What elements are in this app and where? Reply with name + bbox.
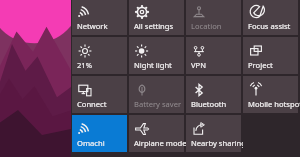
staticText: Night light bbox=[134, 60, 172, 70]
button[interactable]: Battery saver bbox=[129, 76, 184, 113]
button[interactable]: Mobile hotspot bbox=[243, 76, 298, 113]
button[interactable]: Nearby sharing bbox=[186, 115, 241, 152]
staticText: VPN bbox=[191, 60, 206, 70]
staticText: Location bbox=[191, 21, 222, 31]
staticText: All settings bbox=[134, 21, 174, 31]
staticText: Omachi bbox=[77, 138, 105, 148]
staticText: Focus assist bbox=[248, 21, 291, 31]
staticText: Airplane mode bbox=[134, 138, 187, 148]
button[interactable]: Connect bbox=[72, 76, 127, 113]
button[interactable]: VPN bbox=[186, 37, 241, 74]
staticText: Mobile hotspot bbox=[248, 99, 300, 109]
button[interactable]: Project bbox=[243, 37, 298, 74]
staticText: Nearby sharing bbox=[191, 138, 246, 148]
button[interactable]: All settings bbox=[129, 0, 184, 35]
button[interactable]: Omachi bbox=[72, 115, 127, 152]
staticText: Battery saver bbox=[134, 99, 182, 109]
staticText: 21% bbox=[77, 60, 92, 70]
button[interactable]: Location bbox=[186, 0, 241, 35]
button[interactable]: Night light bbox=[129, 37, 184, 74]
staticText: Bluetooth bbox=[191, 99, 227, 109]
staticText: Network bbox=[77, 21, 108, 31]
button[interactable]: Airplane mode bbox=[129, 115, 184, 152]
button[interactable]: Network bbox=[72, 0, 127, 35]
button[interactable]: Bluetooth bbox=[186, 76, 241, 113]
button[interactable]: 21% bbox=[72, 37, 127, 74]
staticText: Connect bbox=[77, 99, 107, 109]
staticText: Project bbox=[248, 60, 273, 70]
button[interactable]: Focus assist bbox=[243, 0, 298, 35]
